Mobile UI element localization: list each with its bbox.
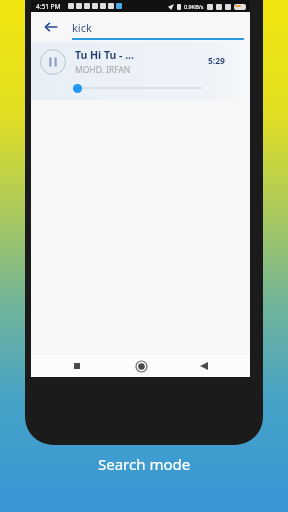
staticText: 4:51 PM	[36, 2, 61, 11]
button[interactable]: Back	[187, 355, 221, 377]
staticText: Search mode	[98, 454, 191, 474]
button[interactable]: Home	[124, 355, 158, 377]
button[interactable]: Pause	[40, 49, 66, 75]
button[interactable]: Recents	[60, 355, 94, 377]
staticText: Tu Hi Tu - ...	[75, 48, 135, 62]
button[interactable]: kick	[72, 14, 244, 40]
staticText: MOHD. IRFAN	[75, 64, 131, 76]
staticText: 0.9KB/s	[184, 3, 204, 10]
button[interactable]: Back	[39, 15, 63, 39]
staticText: 5:29	[208, 55, 225, 67]
staticText: kick	[72, 20, 92, 35]
button[interactable]: Pause	[31, 42, 250, 100]
